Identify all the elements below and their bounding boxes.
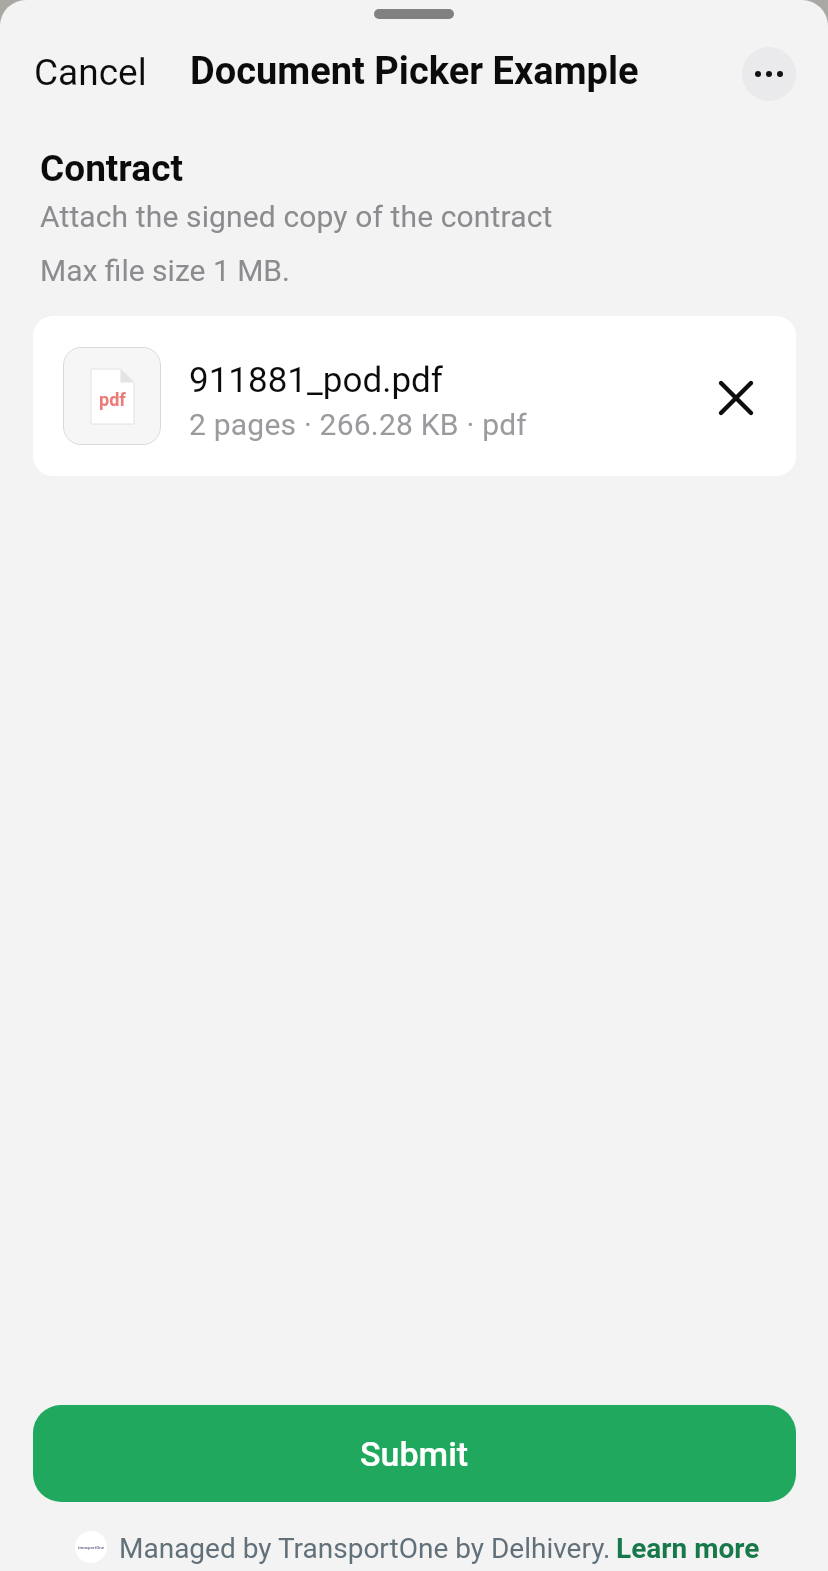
staticText: transportOne: [78, 1545, 105, 1550]
staticText: pdf: [99, 389, 126, 410]
staticText: Max file size 1 MB.: [40, 253, 290, 288]
button[interactable]: Remove file: [705, 367, 767, 429]
staticText: 911881_pod.pdf: [189, 360, 443, 401]
staticText: Managed by TransportOne by Delhivery.: [119, 1532, 611, 1565]
staticText: Submit: [360, 1434, 469, 1474]
button[interactable]: More options: [742, 47, 796, 101]
staticText: 2 pages · 266.28 KB · pdf: [189, 407, 528, 442]
button[interactable]: Cancel: [12, 39, 169, 106]
staticText: Contract: [40, 147, 183, 190]
button[interactable]: Learn more: [616, 1532, 760, 1565]
staticText: Document Picker Example: [190, 49, 639, 94]
staticText: Attach the signed copy of the contract: [40, 199, 553, 234]
button[interactable]: Submit: [33, 1405, 796, 1502]
button[interactable]: pdf: [33, 316, 796, 476]
